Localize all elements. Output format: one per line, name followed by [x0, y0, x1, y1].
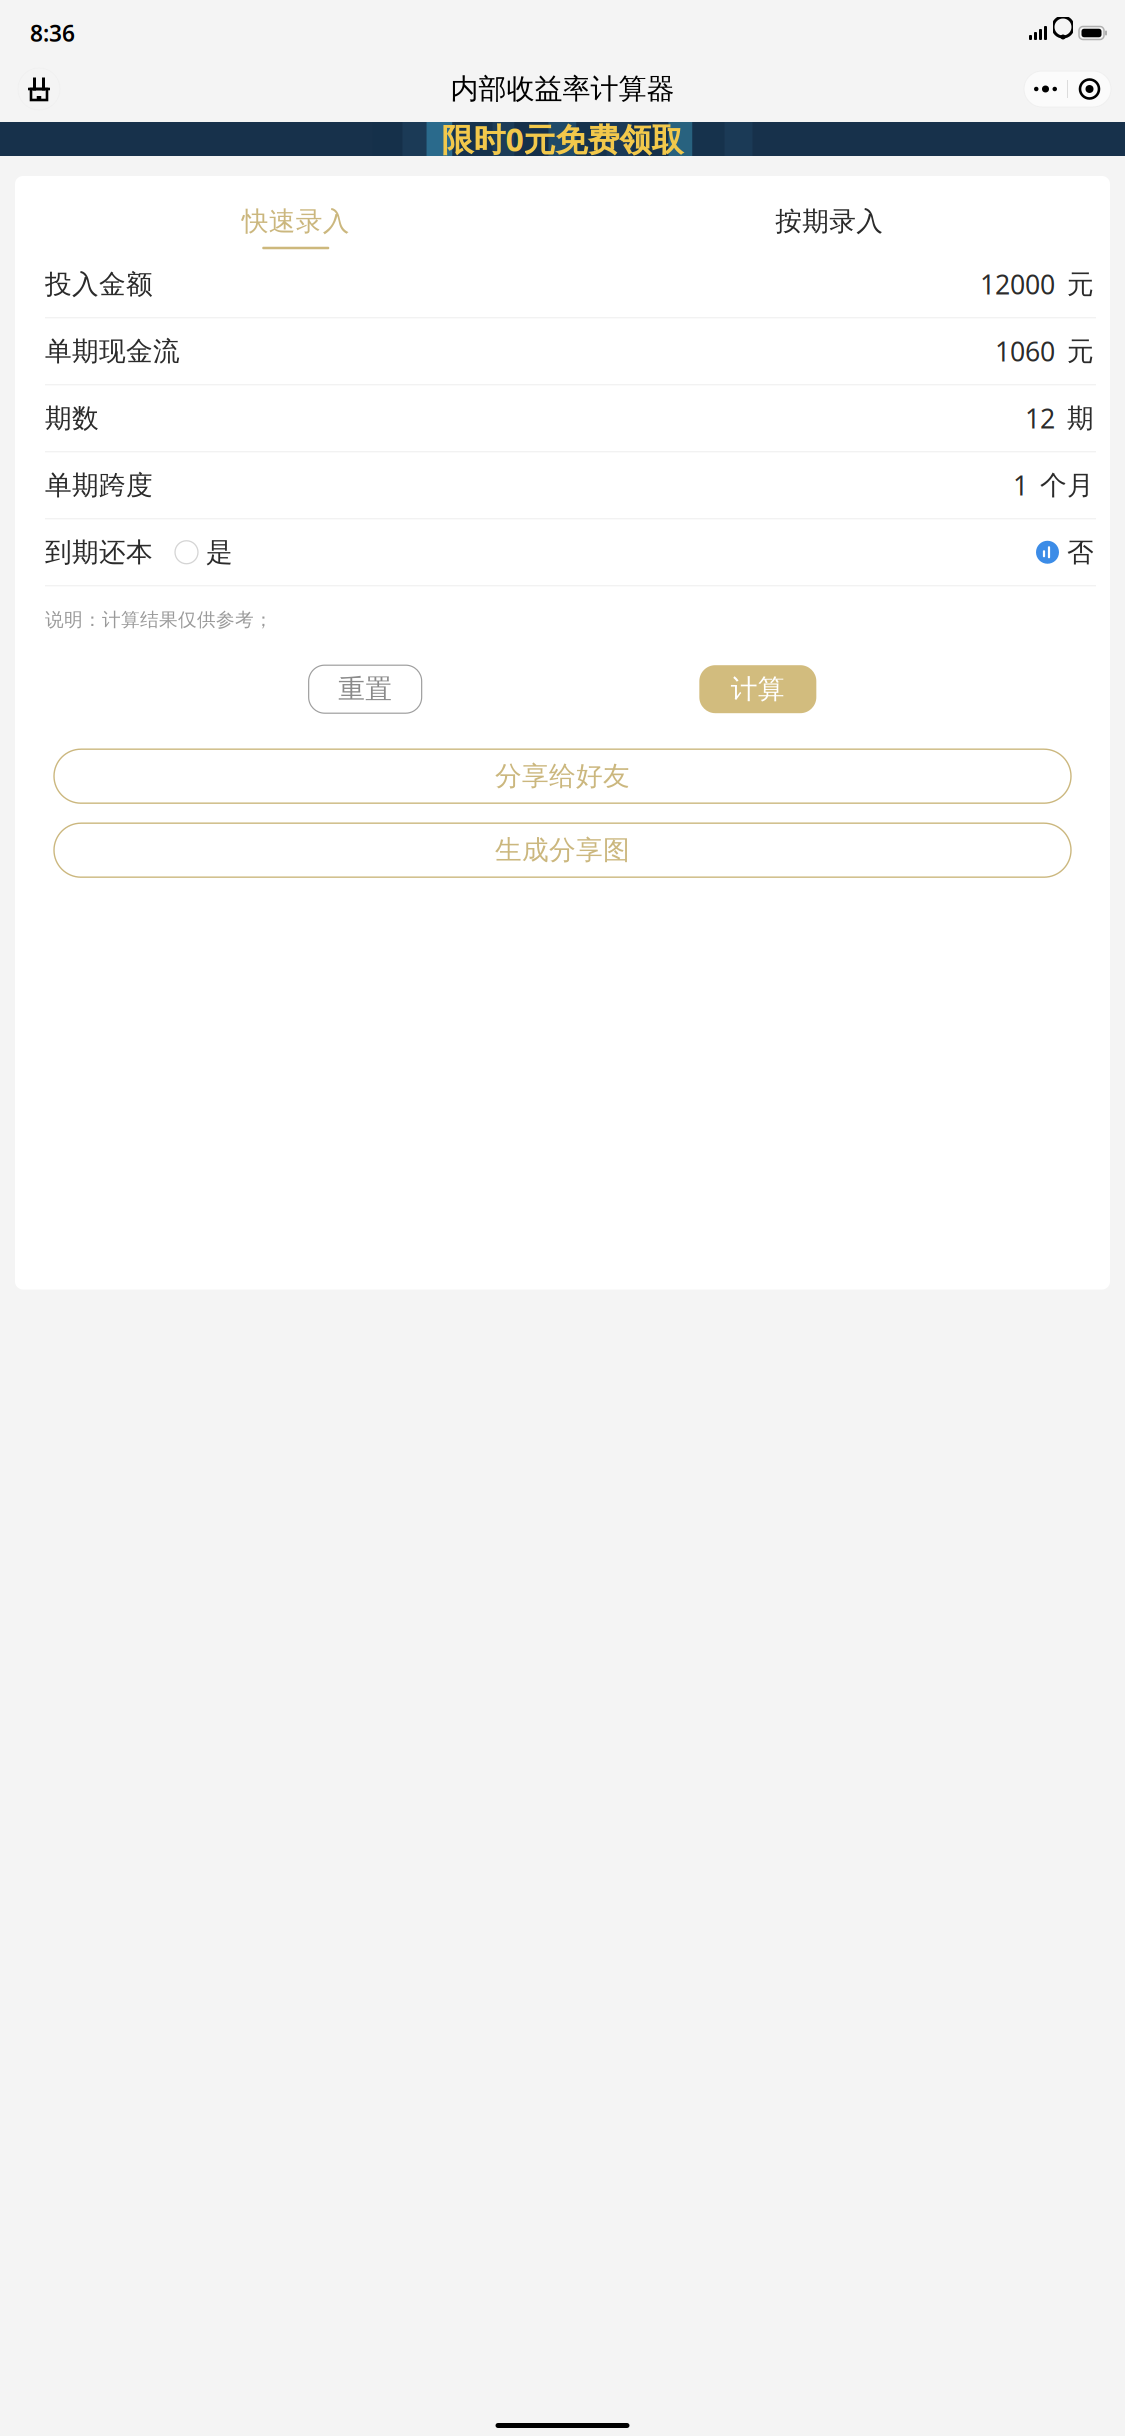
- staticText: 说明：计算结果仅供参考；: [45, 608, 273, 631]
- staticText: 计算: [731, 673, 785, 706]
- staticText: 限时0元免费领取: [441, 118, 683, 160]
- staticText: 到期还本: [45, 536, 153, 569]
- staticText: 8:36: [30, 18, 75, 48]
- staticText: 单期跨度: [45, 469, 153, 502]
- staticText: 期: [1067, 402, 1094, 435]
- button[interactable]: 重置: [309, 665, 422, 713]
- button[interactable]: 投入金额: [29, 251, 1096, 317]
- staticText: 按期录入: [775, 205, 883, 238]
- button[interactable]: 限时0元免费领取: [0, 122, 1125, 156]
- button[interactable]: 按期录入: [562, 176, 1096, 249]
- button[interactable]: 快速录入: [29, 176, 562, 249]
- button[interactable]: 生成分享图: [54, 823, 1071, 877]
- button[interactable]: 单期现金流: [29, 318, 1096, 384]
- staticText: 是: [206, 536, 233, 569]
- staticText: 元: [1067, 268, 1094, 301]
- staticText: 12000: [980, 266, 1055, 302]
- button[interactable]: 分享给好友: [54, 749, 1071, 803]
- button[interactable]: 期数: [29, 385, 1096, 451]
- button[interactable]: 计算: [699, 665, 816, 713]
- staticText: 否: [1067, 536, 1094, 569]
- staticText: 个月: [1040, 469, 1094, 502]
- button[interactable]: Home: [14, 64, 64, 114]
- staticText: 单期现金流: [45, 335, 180, 368]
- button[interactable]: 是: [153, 536, 233, 569]
- button[interactable]: 否: [1036, 536, 1094, 569]
- staticText: 元: [1067, 335, 1094, 368]
- staticText: 重置: [338, 673, 392, 706]
- button[interactable]: 单期跨度: [29, 452, 1096, 518]
- staticText: 1: [1013, 467, 1028, 503]
- staticText: 投入金额: [45, 268, 153, 301]
- staticText: 12: [1025, 400, 1055, 436]
- button[interactable]: More: [1024, 74, 1067, 104]
- staticText: 1060: [995, 333, 1055, 369]
- staticText: 快速录入: [242, 205, 350, 238]
- button[interactable]: Close: [1068, 74, 1111, 104]
- staticText: 分享给好友: [495, 760, 630, 793]
- staticText: 期数: [45, 402, 99, 435]
- staticText: 内部收益率计算器: [450, 72, 674, 106]
- staticText: 生成分享图: [495, 834, 630, 867]
